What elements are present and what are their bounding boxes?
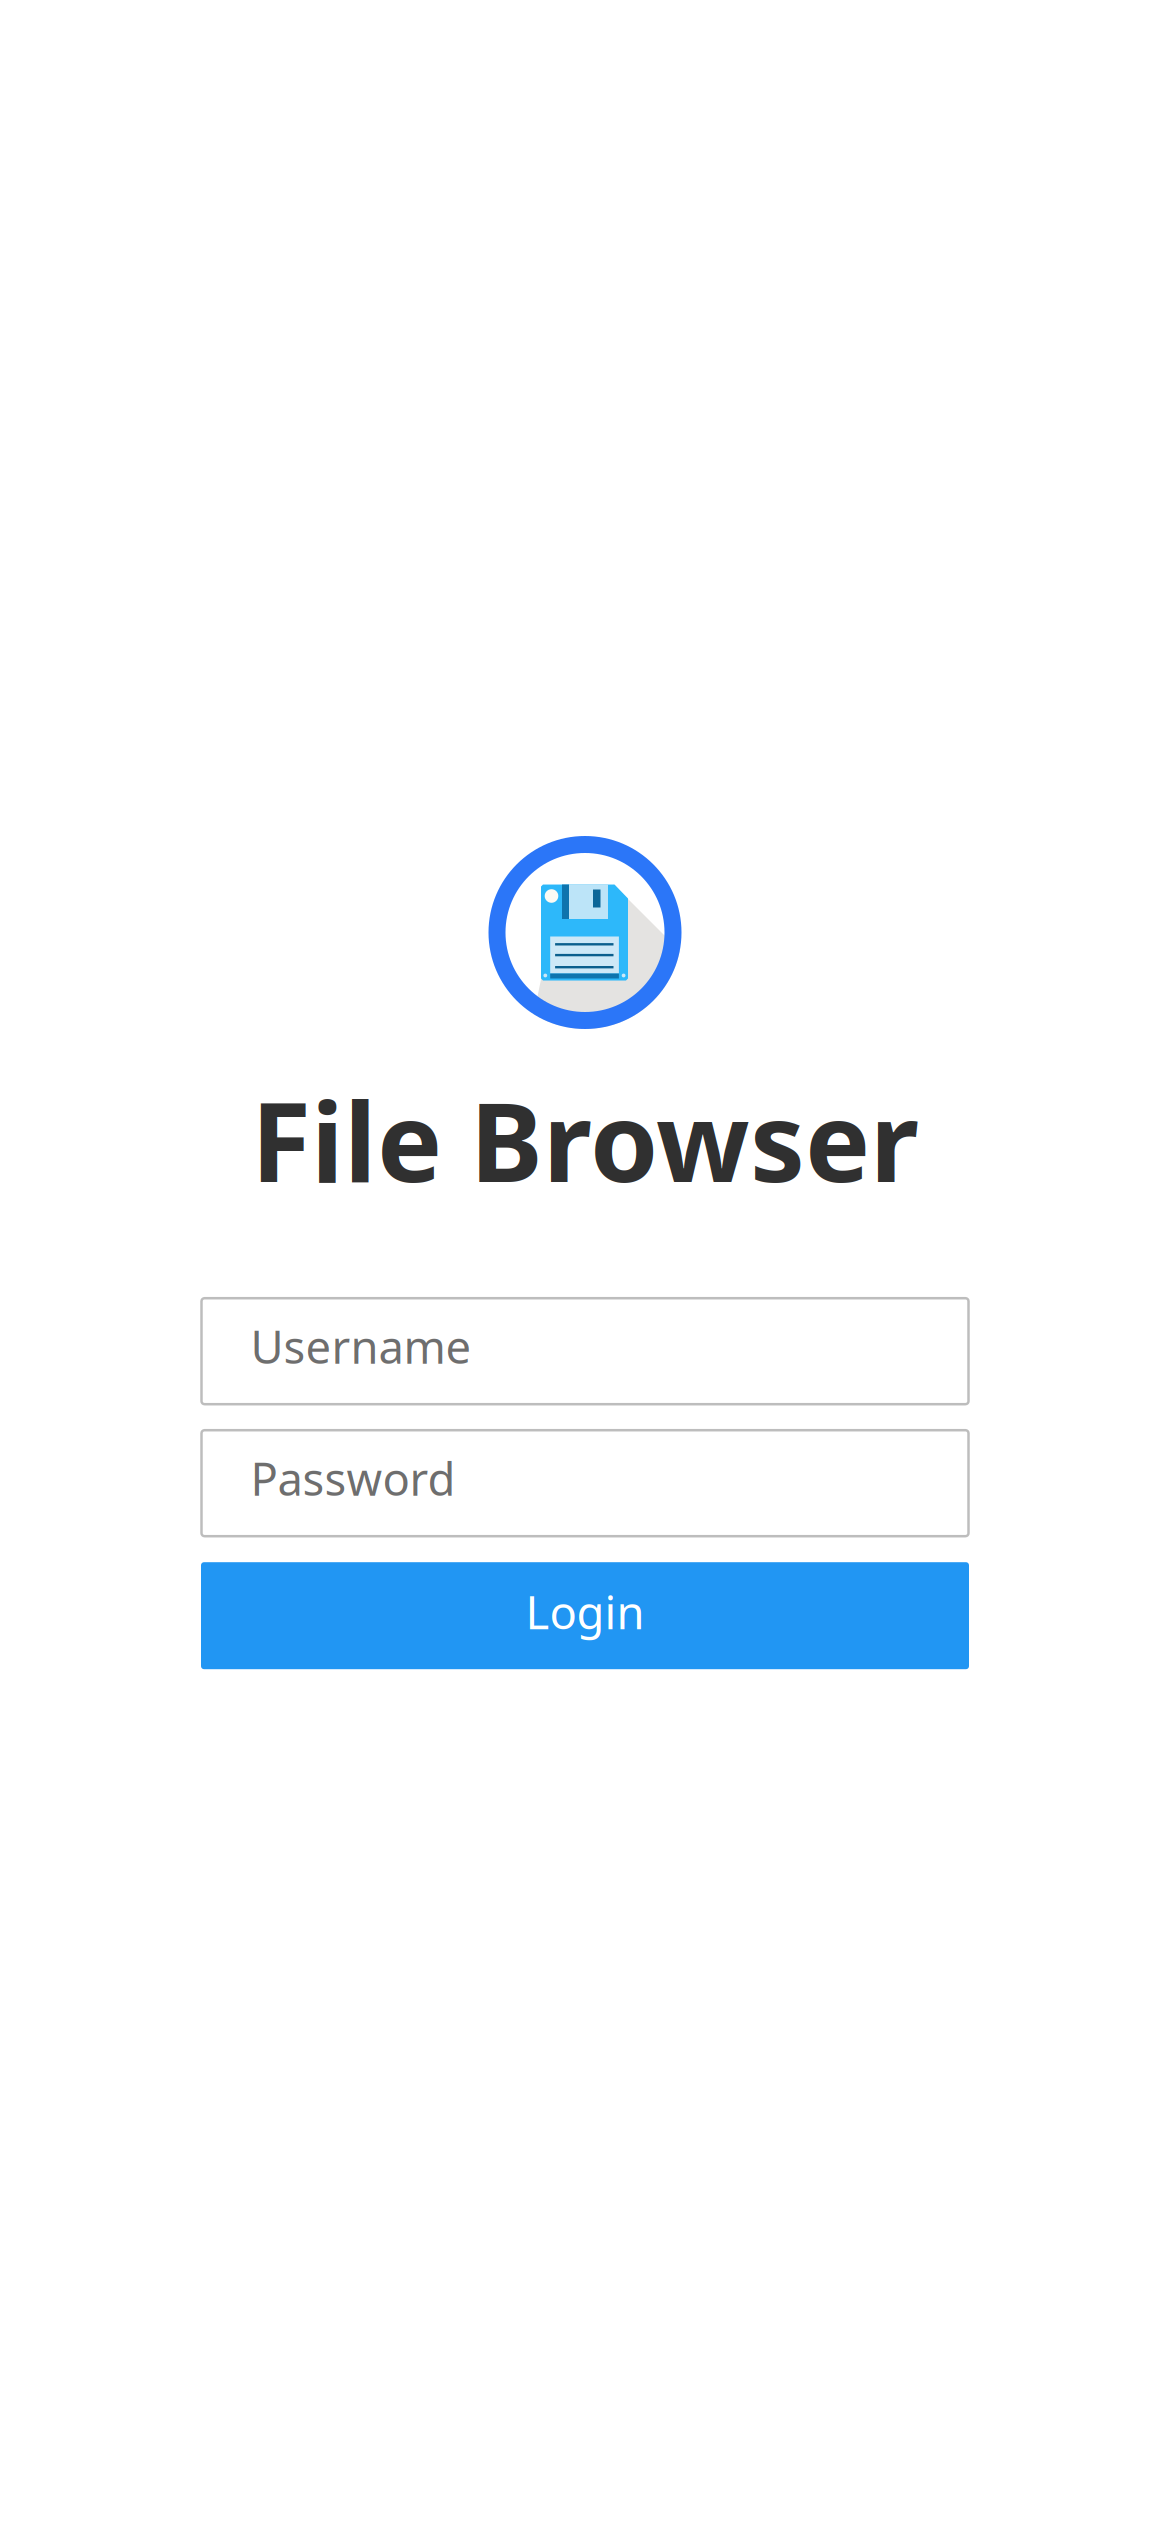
staticText: Username <box>250 1316 471 1376</box>
button[interactable]: Password <box>201 1430 968 1536</box>
staticText: File Browser <box>251 1067 919 1212</box>
staticText: Password <box>250 1448 455 1508</box>
staticText: Login <box>525 1582 644 1642</box>
button[interactable]: Username <box>201 1298 968 1404</box>
button[interactable]: Login <box>201 1562 969 1669</box>
